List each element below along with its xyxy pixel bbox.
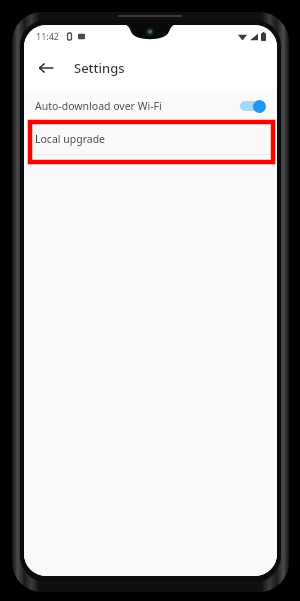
button[interactable]: Auto-download over Wi-Fi toggle — [240, 99, 266, 113]
staticText: Local upgrade — [35, 132, 106, 146]
button[interactable]: Back — [28, 50, 64, 86]
button[interactable]: Local upgrade — [24, 123, 277, 154]
staticText: Settings — [74, 59, 125, 77]
staticText: Auto-download over Wi-Fi — [35, 99, 162, 113]
button[interactable]: Auto-download over Wi-Fi — [24, 89, 277, 122]
staticText: 11:42 — [36, 30, 60, 42]
